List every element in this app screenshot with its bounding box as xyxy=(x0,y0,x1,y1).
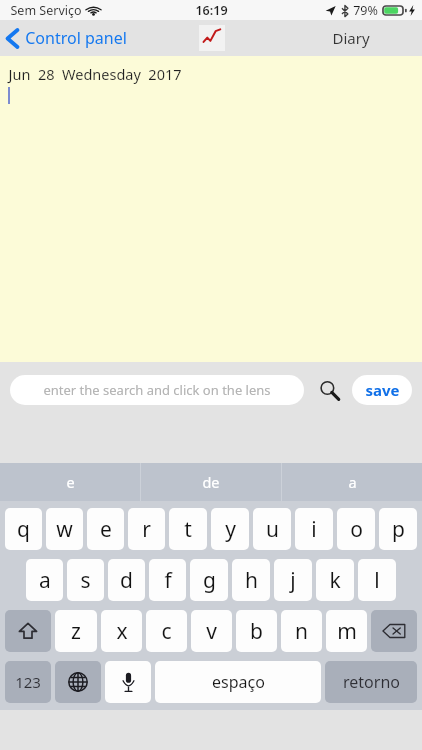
button[interactable]: e xyxy=(87,508,124,550)
staticText: d xyxy=(120,566,133,595)
staticText: a xyxy=(39,566,51,595)
button[interactable]: z xyxy=(55,610,97,652)
staticText: x xyxy=(116,617,128,646)
button[interactable]: x xyxy=(101,610,142,652)
staticText: 123 xyxy=(15,672,41,692)
button[interactable]: s xyxy=(67,559,104,601)
button[interactable]: r xyxy=(128,508,165,550)
button[interactable]: q xyxy=(5,508,42,550)
staticText: o xyxy=(350,515,363,544)
button[interactable]: a xyxy=(26,559,63,601)
staticText: e xyxy=(66,472,75,492)
staticText: a xyxy=(348,472,357,492)
staticText: l xyxy=(374,566,380,595)
button[interactable]: l xyxy=(358,559,396,601)
button[interactable]: u xyxy=(253,508,291,550)
button[interactable]: Search xyxy=(314,375,344,405)
button[interactable]: e xyxy=(0,463,140,501)
button[interactable]: Chart xyxy=(199,25,225,51)
staticText: save xyxy=(365,380,400,400)
staticText: j xyxy=(290,566,296,595)
button[interactable]: espaço xyxy=(155,661,321,703)
staticText: q xyxy=(17,515,30,544)
button[interactable]: k xyxy=(316,559,354,601)
button[interactable]: o xyxy=(337,508,375,550)
button[interactable]: d xyxy=(108,559,145,601)
button[interactable]: v xyxy=(191,610,232,652)
staticText: t xyxy=(184,515,192,544)
button[interactable]: Backspace xyxy=(371,610,417,652)
button[interactable]: m xyxy=(326,610,367,652)
staticText: espaço xyxy=(212,671,265,693)
staticText: Sem Serviço xyxy=(10,2,82,19)
button[interactable]: retorno xyxy=(325,661,417,703)
staticText: i xyxy=(311,515,317,544)
staticText: p xyxy=(392,515,405,544)
staticText: r xyxy=(142,515,151,544)
staticText: Control panel xyxy=(25,27,127,49)
button[interactable]: save xyxy=(352,375,412,405)
button[interactable]: g xyxy=(190,559,228,601)
staticText: y xyxy=(225,515,236,544)
staticText: n xyxy=(295,617,308,646)
staticText: c xyxy=(161,617,172,646)
button[interactable]: j xyxy=(274,559,312,601)
staticText: Jun 28 Wednesday 2017 xyxy=(8,64,182,84)
button[interactable]: n xyxy=(281,610,322,652)
button[interactable]: c xyxy=(146,610,187,652)
button[interactable]: t xyxy=(169,508,207,550)
staticText: m xyxy=(337,617,357,646)
button[interactable]: Shift xyxy=(5,610,51,652)
staticText: b xyxy=(250,617,263,646)
button[interactable]: enter the search and click on the lens xyxy=(10,375,304,405)
button[interactable]: i xyxy=(295,508,333,550)
staticText: 79% xyxy=(353,2,378,19)
staticText: enter the search and click on the lens xyxy=(43,381,271,399)
button[interactable]: Dictation xyxy=(105,661,151,703)
staticText: de xyxy=(202,472,220,492)
staticText: u xyxy=(266,515,279,544)
staticText: k xyxy=(329,566,341,595)
button[interactable]: f xyxy=(149,559,186,601)
button[interactable]: Change keyboard language xyxy=(55,661,101,703)
staticText: z xyxy=(71,617,81,646)
button[interactable]: 123 xyxy=(5,661,51,703)
button[interactable]: w xyxy=(46,508,83,550)
button[interactable]: Control panel xyxy=(0,23,137,53)
button[interactable]: b xyxy=(236,610,277,652)
staticText: f xyxy=(164,566,172,595)
staticText: h xyxy=(245,566,258,595)
staticText: 16:19 xyxy=(195,2,228,19)
button[interactable]: y xyxy=(211,508,249,550)
staticText: w xyxy=(56,515,73,544)
staticText: Diary xyxy=(332,28,370,48)
button[interactable]: a xyxy=(282,463,422,501)
staticText: retorno xyxy=(343,671,400,693)
staticText: s xyxy=(80,566,91,595)
staticText: v xyxy=(206,617,217,646)
staticText: g xyxy=(203,566,216,595)
staticText: e xyxy=(100,515,112,544)
button[interactable]: h xyxy=(232,559,270,601)
button[interactable]: p xyxy=(379,508,417,550)
button[interactable]: de xyxy=(141,463,281,501)
